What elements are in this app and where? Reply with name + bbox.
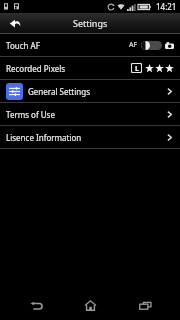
other: Open [165,133,174,142]
button[interactable]: Touch AF [0,34,180,56]
staticText: Touch AF [6,40,129,51]
staticText: 14:21 [156,1,177,12]
button[interactable]: General Settings [0,80,180,102]
button[interactable]: Touch AF toggle [141,41,162,50]
button[interactable]: Home [71,292,109,318]
staticText: Lisence Information [6,132,165,143]
staticText: Settings [73,17,108,29]
button[interactable]: Back [17,292,55,318]
other: Open [165,110,174,119]
button[interactable]: Back [4,14,26,32]
other: Open [165,87,174,96]
staticText: AF [129,40,138,50]
button[interactable]: Lisence Information [0,126,180,148]
staticText: General Settings [28,86,165,97]
staticText: L [135,64,139,72]
button[interactable]: Recorded Pixels [0,57,180,79]
button[interactable]: Terms of Use [0,103,180,125]
staticText: Terms of Use [6,109,165,120]
staticText: Recorded Pixels [6,63,131,74]
button[interactable]: Recent apps [126,292,164,318]
